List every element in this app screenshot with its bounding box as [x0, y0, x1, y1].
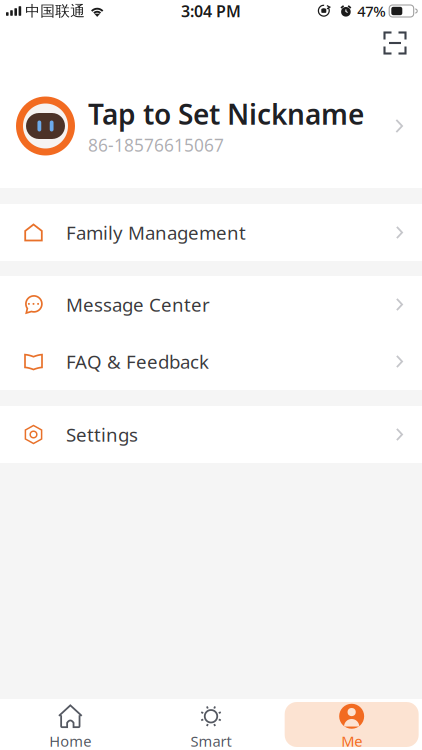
staticText: Message Center [66, 292, 210, 317]
button[interactable]: FAQ & Feedback [0, 333, 422, 390]
staticText: Tap to Set Nickname [88, 95, 364, 133]
staticText: FAQ & Feedback [66, 349, 209, 374]
button[interactable]: Message Center [0, 276, 422, 333]
staticText: Home [49, 731, 91, 750]
button[interactable]: Family Management [0, 204, 422, 261]
staticText: 中国联通 [25, 2, 85, 20]
staticText: Smart [190, 731, 231, 750]
button[interactable]: Scan [374, 22, 416, 64]
staticText: Settings [66, 422, 138, 447]
button[interactable]: Settings [0, 406, 422, 463]
button[interactable]: Tap to Set Nickname [0, 64, 422, 188]
staticText: 3:04 PM [181, 0, 241, 22]
staticText: 47% [357, 1, 385, 21]
button[interactable]: Me [281, 699, 422, 750]
staticText: 86-18576615067 [88, 134, 224, 157]
button[interactable]: Smart [141, 699, 281, 750]
staticText: Family Management [66, 220, 246, 245]
staticText: Me [341, 731, 362, 750]
button[interactable]: Home [0, 699, 141, 750]
